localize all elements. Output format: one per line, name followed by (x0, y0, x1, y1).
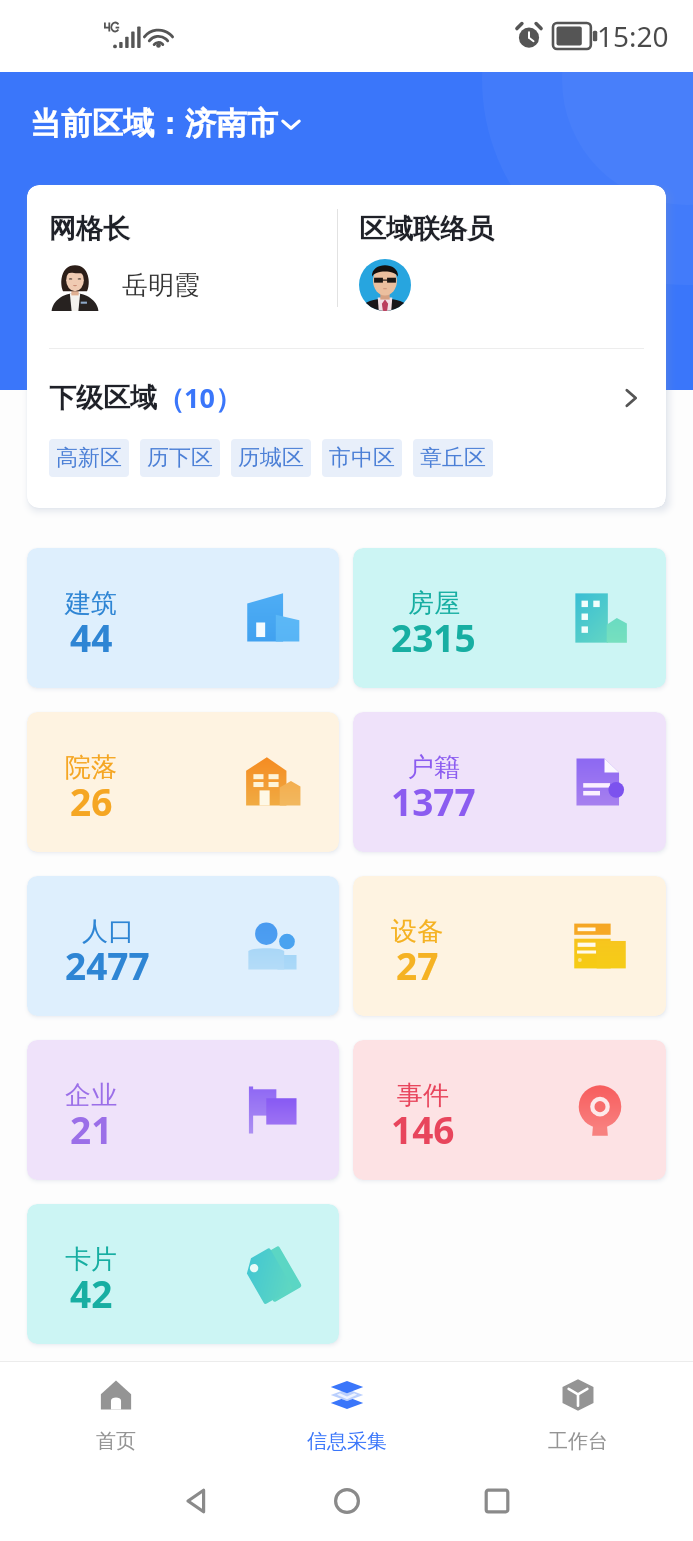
button[interactable]: 高新区 (49, 439, 129, 477)
button[interactable]: 工作台 (462, 1362, 693, 1460)
staticText: 网格长 (49, 212, 130, 246)
staticText: 建筑 (65, 587, 117, 620)
button[interactable]: 企业 (27, 1040, 339, 1180)
staticText: 企业 (65, 1079, 117, 1112)
button[interactable]: 当前区域：济南市 (30, 104, 303, 143)
button[interactable]: Recent apps (422, 1486, 572, 1516)
staticText: 历城区 (238, 444, 304, 472)
button[interactable]: 建筑 (27, 548, 339, 688)
button[interactable]: 房屋 (353, 548, 666, 688)
button[interactable]: 院落 (27, 712, 339, 852)
staticText: 区域联络员 (359, 212, 494, 246)
staticText: （10） (157, 379, 242, 416)
button[interactable]: 下级区域 (27, 349, 666, 439)
staticText: 高新区 (56, 444, 122, 472)
staticText: 院落 (65, 751, 117, 784)
staticText: 户籍 (408, 751, 460, 784)
staticText: 27 (396, 940, 439, 990)
button[interactable]: 户籍 (353, 712, 666, 852)
staticText: 设备 (391, 915, 443, 948)
staticText: 卡片 (65, 1243, 117, 1276)
button[interactable]: 历下区 (140, 439, 220, 477)
staticText: 事件 (397, 1079, 449, 1112)
staticText: 房屋 (408, 587, 460, 620)
button[interactable]: 首页 (0, 1362, 231, 1460)
staticText: 1377 (391, 776, 476, 826)
staticText: 42 (70, 1268, 113, 1318)
button[interactable]: 信息采集 (231, 1362, 462, 1460)
staticText: 2477 (65, 940, 150, 990)
staticText: 岳明霞 (122, 269, 200, 302)
button[interactable]: 市中区 (322, 439, 402, 477)
button[interactable]: 事件 (353, 1040, 666, 1180)
staticText: 26 (70, 776, 113, 826)
staticText: 2315 (391, 612, 476, 662)
staticText: 首页 (96, 1429, 136, 1452)
staticText: 章丘区 (420, 444, 486, 472)
staticText: 信息采集 (307, 1429, 387, 1452)
staticText: 146 (391, 1104, 455, 1154)
staticText: 44 (70, 612, 113, 662)
button[interactable]: 历城区 (231, 439, 311, 477)
staticText: 21 (70, 1104, 113, 1154)
staticText: 当前区域：济南市 (30, 104, 278, 143)
staticText: 下级区域 (49, 381, 157, 415)
button[interactable]: Home (272, 1486, 422, 1516)
staticText: 人口 (82, 915, 134, 948)
staticText: 历下区 (147, 444, 213, 472)
button[interactable]: 设备 (353, 876, 666, 1016)
button[interactable]: 卡片 (27, 1204, 339, 1344)
button[interactable]: Back (122, 1486, 272, 1516)
button[interactable]: 人口 (27, 876, 339, 1016)
staticText: 工作台 (548, 1429, 608, 1452)
button[interactable]: 章丘区 (413, 439, 493, 477)
staticText: 市中区 (329, 444, 395, 472)
staticText: 15:20 (597, 17, 669, 55)
